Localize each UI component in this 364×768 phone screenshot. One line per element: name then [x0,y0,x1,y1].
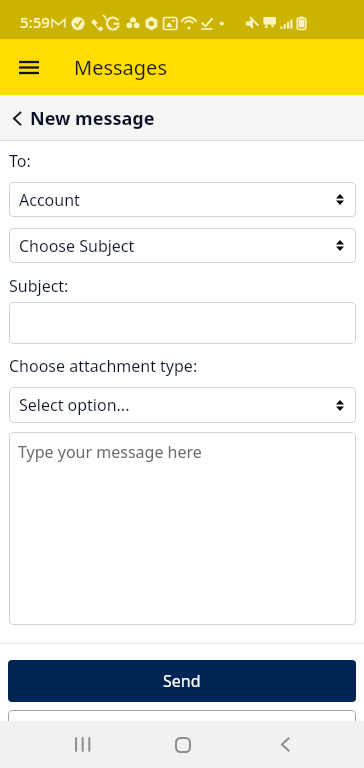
button[interactable] [9,302,356,344]
staticText: To: [9,150,31,171]
button[interactable]: Account [9,182,356,217]
staticText: Account [19,189,80,211]
button[interactable]: Recent apps [58,721,106,768]
button[interactable]: Type your message here [9,432,356,625]
button[interactable]: Send [8,660,356,702]
button[interactable]: Back [4,105,30,131]
button[interactable]: Open navigation menu [8,46,50,88]
button[interactable]: Choose Subject [9,228,356,263]
staticText: Choose attachment type: [9,355,198,376]
staticText: Messages [74,54,167,81]
button[interactable]: Home [159,721,207,768]
staticText: 5:59 [20,12,50,32]
staticText: Send [163,670,201,692]
staticText: Choose Subject [19,235,135,257]
button[interactable] [8,710,356,752]
staticText: Subject: [9,275,69,296]
staticText: Type your message here [18,441,202,463]
staticText: Select option... [19,394,130,416]
button[interactable]: Select option... [9,387,356,423]
staticText: New message [30,106,155,131]
button[interactable]: Back [261,721,309,768]
